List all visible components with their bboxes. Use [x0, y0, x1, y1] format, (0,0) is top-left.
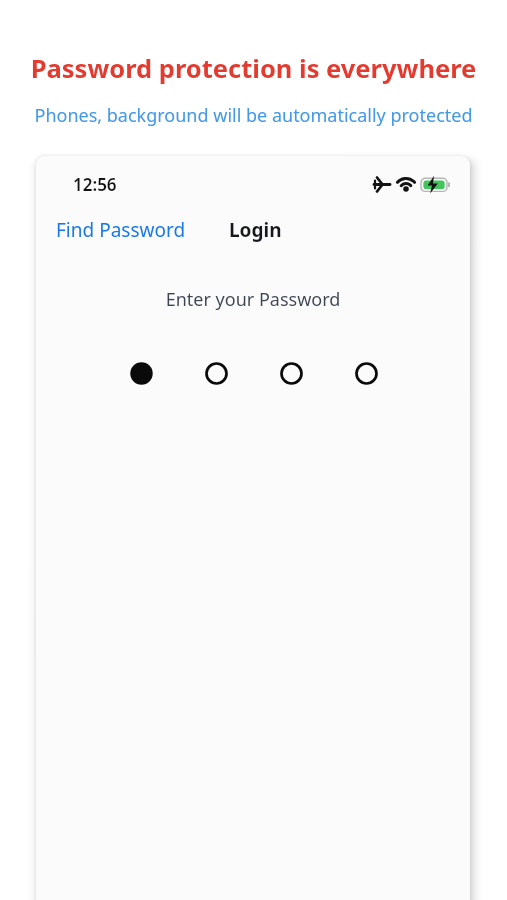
staticText: Password protection is everywhere [0, 51, 507, 86]
staticText: Login [229, 217, 282, 243]
button[interactable]: Find Password [48, 210, 178, 236]
staticText: Enter your Password [36, 287, 470, 312]
staticText: 12:56 [73, 173, 117, 196]
staticText: Find Password [56, 217, 186, 243]
button[interactable]: Login [221, 210, 274, 236]
staticText: Phones, background will be automatically… [0, 103, 507, 128]
